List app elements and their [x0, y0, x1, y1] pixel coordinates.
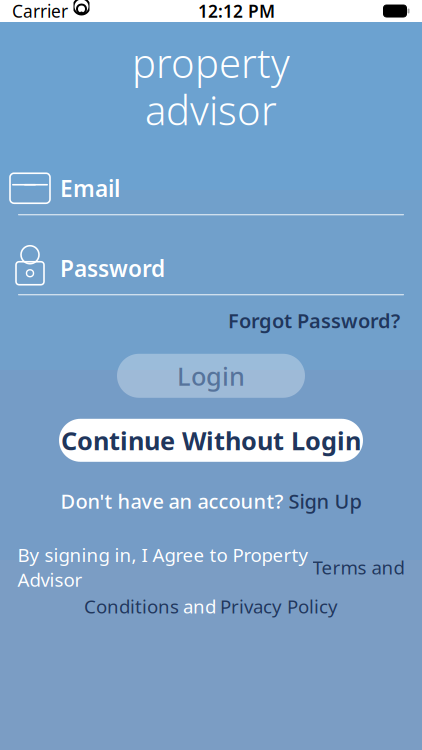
staticText: Password — [60, 253, 165, 283]
staticText: Email — [60, 173, 120, 203]
staticText: Terms and — [312, 555, 404, 580]
staticText: Continue Without Login — [61, 423, 361, 457]
staticText: Sign Up — [288, 488, 361, 514]
staticText: Carrier — [12, 0, 68, 22]
button[interactable]: Continue Without Login — [59, 419, 363, 462]
staticText: Login — [177, 359, 245, 393]
staticText: Don't have an account? — [60, 488, 283, 514]
button[interactable]: Privacy Policy — [220, 594, 338, 619]
staticText: Forgot Password? — [228, 307, 400, 334]
staticText: and — [183, 594, 216, 619]
button[interactable]: Terms and — [312, 555, 404, 580]
button[interactable]: Forgot Password? — [224, 301, 404, 340]
button[interactable]: Login — [117, 354, 305, 398]
staticText: Privacy Policy — [220, 594, 338, 619]
staticText: By signing in, I Agree to Property Advis… — [17, 542, 308, 592]
staticText: advisor — [145, 83, 277, 136]
button[interactable]: Don't have an account? — [60, 484, 361, 518]
staticText: property — [132, 36, 290, 89]
staticText: Conditions — [84, 594, 179, 619]
button[interactable]: Conditions — [84, 594, 179, 619]
staticText: 12:12 PM — [198, 0, 275, 22]
